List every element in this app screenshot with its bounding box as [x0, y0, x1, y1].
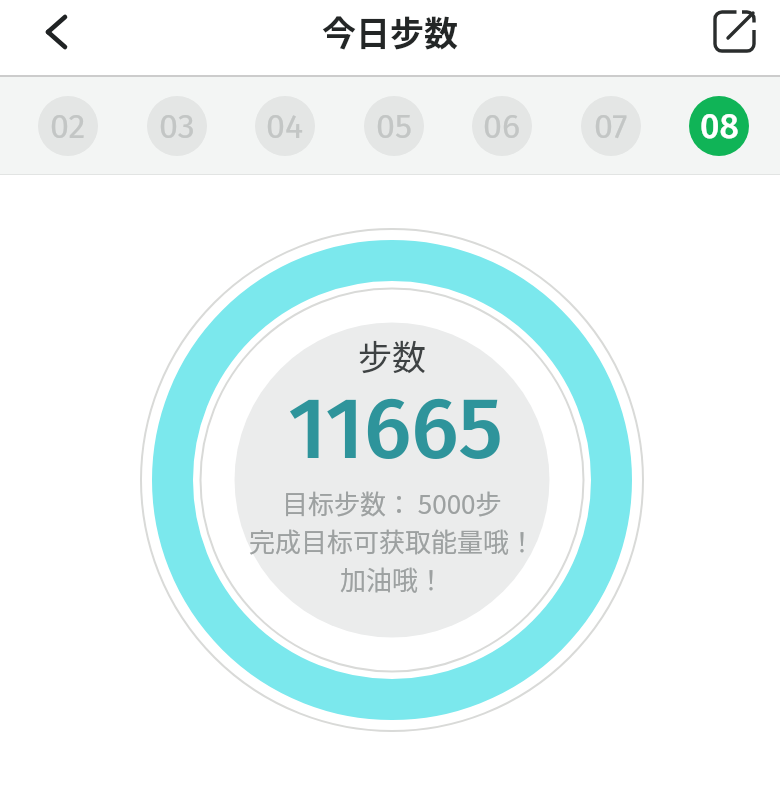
button[interactable]: 06 — [472, 96, 532, 156]
staticText: 03 — [159, 106, 195, 147]
staticText: 06 — [483, 106, 521, 147]
button[interactable] — [30, 4, 82, 60]
button[interactable]: 07 — [581, 96, 641, 156]
staticText: 目标步数： 5000步 — [282, 484, 502, 522]
staticText: 07 — [594, 106, 628, 147]
button[interactable]: 08 — [689, 96, 749, 156]
staticText: 11665 — [288, 378, 503, 481]
button[interactable]: 04 — [255, 96, 315, 156]
staticText: 04 — [266, 106, 304, 147]
staticText: 08 — [700, 106, 739, 147]
button[interactable]: 05 — [364, 96, 424, 156]
staticText: 02 — [50, 106, 86, 147]
button[interactable] — [707, 2, 763, 60]
button[interactable]: 03 — [147, 96, 207, 156]
staticText: 完成目标可获取能量哦！ — [249, 522, 536, 560]
staticText: 今日步数 — [322, 7, 458, 56]
button[interactable]: 02 — [38, 96, 98, 156]
staticText: 加油哦！ — [340, 560, 445, 598]
staticText: 05 — [376, 106, 413, 147]
staticText: 步数 — [358, 331, 426, 380]
